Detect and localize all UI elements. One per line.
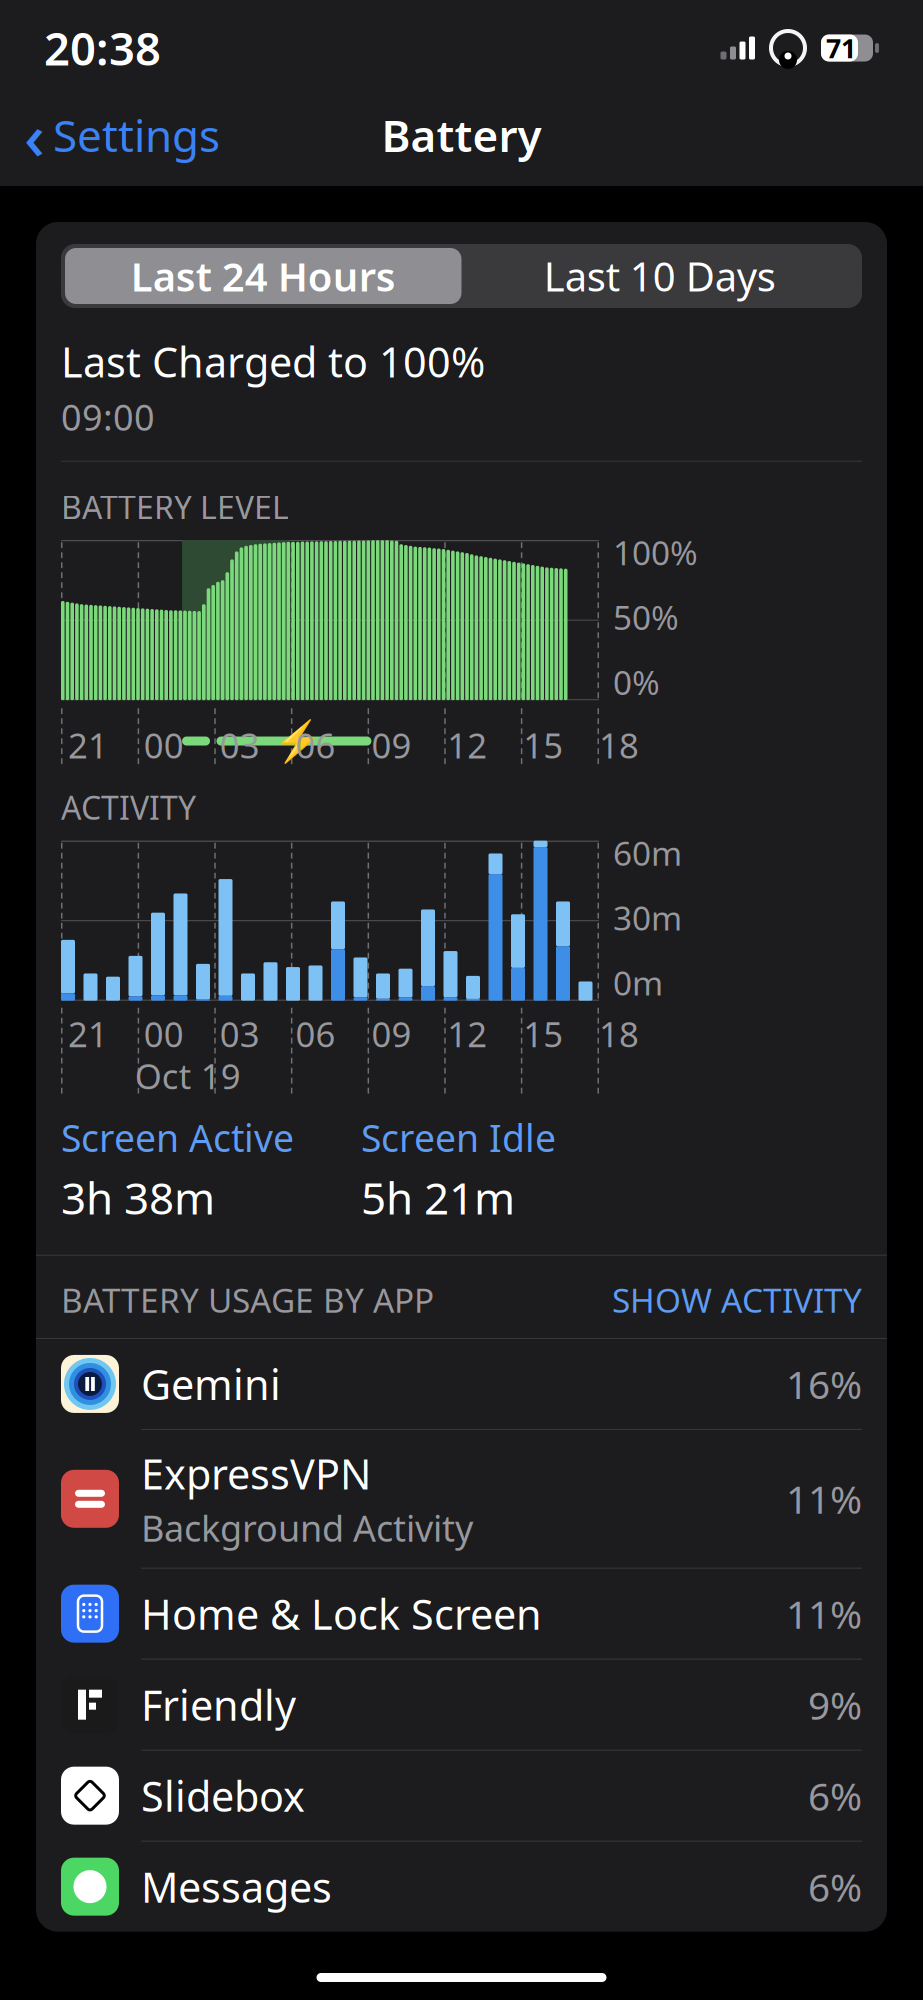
staticText: Background Activity: [141, 1504, 473, 1552]
staticText: 15: [523, 1011, 563, 1057]
staticText: 12: [447, 722, 487, 768]
staticText: Battery: [381, 106, 541, 164]
staticText: 16%: [786, 1358, 862, 1410]
staticText: Slidebox: [141, 1768, 305, 1823]
button[interactable]: Slidebox: [36, 1751, 887, 1842]
staticText: 71: [826, 30, 856, 66]
staticText: 9%: [808, 1679, 862, 1730]
staticText: ‹: [24, 92, 45, 177]
staticText: Last 10 Days: [544, 249, 776, 302]
staticText: Messages: [141, 1859, 332, 1914]
staticText: 00: [144, 1011, 184, 1057]
staticText: 11%: [786, 1473, 862, 1524]
button[interactable]: ExpressVPN: [36, 1430, 887, 1569]
staticText: 12: [447, 1011, 487, 1057]
button[interactable]: Ⅱ: [36, 1339, 887, 1430]
staticText: 03: [220, 1011, 260, 1057]
button[interactable]: Friendly: [36, 1660, 887, 1751]
staticText: 18: [599, 722, 639, 768]
button[interactable]: Home & Lock Screen: [36, 1569, 887, 1660]
staticText: 21: [68, 722, 108, 768]
button[interactable]: Last 24 Hours: [65, 248, 461, 304]
staticText: 0%: [613, 660, 660, 704]
staticText: ACTIVITY: [61, 786, 196, 829]
staticText: BATTERY LEVEL: [61, 486, 289, 528]
staticText: 18: [599, 1011, 639, 1057]
staticText: 0m: [613, 960, 663, 1005]
staticText: 15: [523, 722, 563, 768]
staticText: 06: [296, 1011, 336, 1057]
staticText: 6%: [808, 1770, 862, 1821]
staticText: 60m: [613, 831, 682, 875]
button[interactable]: ‹: [0, 84, 220, 185]
staticText: 20:38: [44, 18, 161, 78]
staticText: BATTERY USAGE BY APP: [61, 1278, 434, 1322]
staticText: 21: [68, 1011, 108, 1057]
staticText: Friendly: [141, 1677, 296, 1732]
staticText: 09:00: [61, 393, 155, 441]
staticText: 100%: [613, 530, 698, 574]
staticText: 09: [371, 722, 411, 768]
staticText: Screen Active: [61, 1113, 294, 1162]
staticText: Last 24 Hours: [131, 249, 396, 302]
staticText: 09: [371, 1011, 411, 1057]
staticText: 03: [220, 722, 260, 768]
staticText: Last Charged to 100%: [61, 334, 485, 389]
button[interactable]: SHOW ACTIVITY: [612, 1278, 862, 1322]
staticText: Settings: [53, 106, 220, 164]
button[interactable]: Last 10 Days: [461, 248, 858, 304]
staticText: 06: [296, 722, 336, 768]
staticText: SHOW ACTIVITY: [612, 1278, 862, 1322]
staticText: Ⅱ: [83, 1373, 96, 1395]
staticText: 11%: [786, 1588, 862, 1639]
staticText: 5h 21m: [361, 1168, 515, 1227]
staticText: ExpressVPN: [141, 1446, 371, 1501]
staticText: Screen Idle: [361, 1113, 556, 1162]
staticText: 6%: [808, 1861, 862, 1912]
staticText: 50%: [613, 595, 679, 639]
staticText: Home & Lock Screen: [141, 1586, 542, 1641]
staticText: ⚡: [273, 718, 323, 764]
staticText: 00: [144, 722, 184, 768]
staticText: Gemini: [141, 1356, 281, 1411]
staticText: Oct 19: [135, 1053, 241, 1099]
staticText: 30m: [613, 896, 682, 940]
button[interactable]: Messages: [36, 1842, 887, 1932]
staticText: 3h 38m: [61, 1168, 215, 1227]
